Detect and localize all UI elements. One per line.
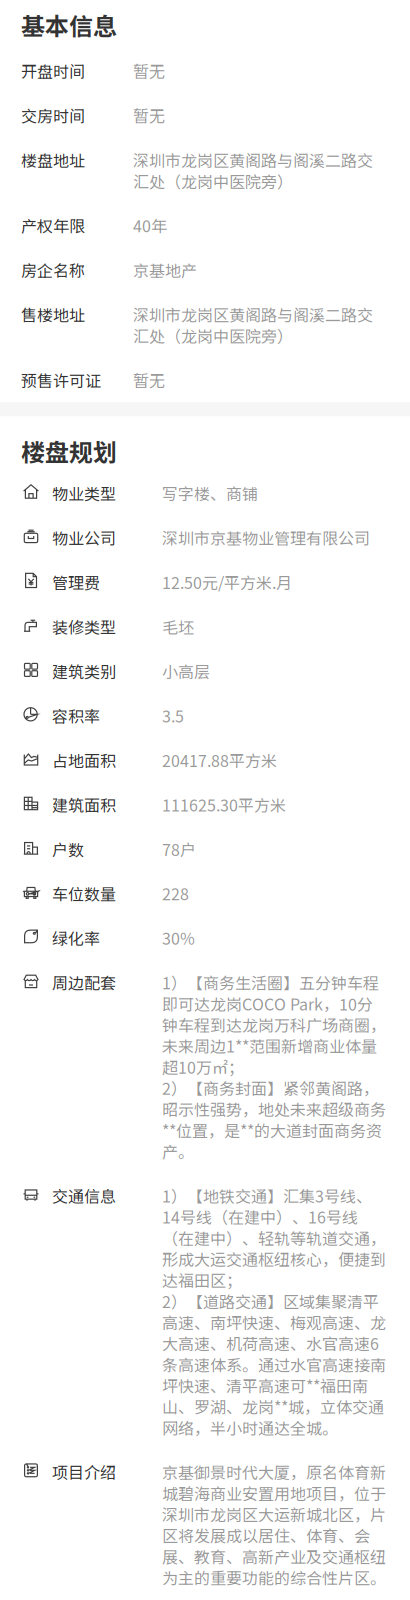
button[interactable]: 项目介绍 <box>0 1450 410 1600</box>
button[interactable]: 物业类型 <box>0 471 410 515</box>
staticText: 产权年限 <box>21 215 85 236</box>
staticText: 装修类型 <box>52 616 116 637</box>
staticText: 预售许可证 <box>21 369 101 390</box>
staticText: 物业类型 <box>52 482 116 504</box>
staticText: 京基御景时代大厦，原名体育新城碧海商业安置用地项目，位于深圳市龙岗区大运新城北区… <box>162 1461 386 1588</box>
staticText: 111625.30平方米 <box>162 794 286 815</box>
button[interactable]: 物业公司 <box>0 515 410 560</box>
staticText: 12.50元/平方米.月 <box>162 571 292 593</box>
staticText: 1）【地铁交通】汇集3号线、14号线（在建中）、16号线（在建中）、轻轨等轨道交… <box>162 1185 386 1438</box>
button[interactable]: 建筑面积 <box>0 782 410 827</box>
staticText: 毛坯 <box>162 616 194 637</box>
staticText: 3.5 <box>162 705 184 726</box>
staticText: 建筑类别 <box>52 660 116 681</box>
button[interactable]: 周边配套 <box>0 960 410 1173</box>
staticText: 绿化率 <box>52 927 100 948</box>
button[interactable]: 建筑类别 <box>0 649 410 693</box>
staticText: 78户 <box>162 838 196 859</box>
staticText: 户数 <box>52 838 84 859</box>
staticText: 车位数量 <box>52 883 116 904</box>
staticText: 30% <box>162 927 195 948</box>
staticText: 40年 <box>133 215 167 236</box>
button[interactable]: 装修类型 <box>0 604 410 649</box>
button[interactable]: 管理费 <box>0 560 410 604</box>
button[interactable]: 绿化率 <box>0 916 410 960</box>
button[interactable]: 交房时间 <box>0 93 410 138</box>
staticText: 交房时间 <box>21 105 85 126</box>
button[interactable]: 车位数量 <box>0 871 410 916</box>
button[interactable]: 交通信息 <box>0 1173 410 1450</box>
staticText: 周边配套 <box>52 972 116 993</box>
button[interactable]: 楼盘地址 <box>0 138 410 203</box>
button[interactable]: 容积率 <box>0 693 410 738</box>
staticText: 暂无 <box>133 369 165 390</box>
staticText: 物业公司 <box>52 527 116 548</box>
staticText: 深圳市龙岗区黄阁路与阁溪二路交汇处（龙岗中医院旁） <box>133 304 373 346</box>
staticText: 深圳市京基物业管理有限公司 <box>162 527 370 548</box>
staticText: 售楼地址 <box>21 304 85 325</box>
button[interactable]: 占地面积 <box>0 738 410 782</box>
staticText: 管理费 <box>52 571 100 593</box>
button[interactable]: 房企名称 <box>0 248 410 292</box>
staticText: 深圳市龙岗区黄阁路与阁溪二路交汇处（龙岗中医院旁） <box>133 149 373 191</box>
staticText: 房企名称 <box>21 259 85 280</box>
staticText: 1）【商务生活圈】五分钟车程即可达龙岗COCO Park，10分钟车程到达龙岗万… <box>162 972 386 1161</box>
staticText: 暂无 <box>133 105 165 126</box>
staticText: 开盘时间 <box>21 60 85 81</box>
staticText: 基本信息 <box>21 9 117 41</box>
staticText: 容积率 <box>52 705 100 726</box>
button[interactable]: 预售许可证 <box>0 358 410 402</box>
button[interactable]: 售楼地址 <box>0 292 410 358</box>
staticText: 楼盘规划 <box>21 435 117 467</box>
staticText: 小高层 <box>162 660 210 681</box>
staticText: 暂无 <box>133 60 165 81</box>
staticText: 20417.88平方米 <box>162 749 277 770</box>
button[interactable]: 产权年限 <box>0 203 410 248</box>
staticText: 京基地产 <box>133 259 197 280</box>
staticText: 楼盘地址 <box>21 149 85 170</box>
staticText: 写字楼、商铺 <box>162 482 258 504</box>
button[interactable]: 户数 <box>0 827 410 871</box>
staticText: 228 <box>162 883 189 904</box>
staticText: 占地面积 <box>52 749 116 770</box>
staticText: 项目介绍 <box>52 1461 116 1482</box>
staticText: 交通信息 <box>52 1185 116 1206</box>
staticText: 建筑面积 <box>52 794 116 815</box>
button[interactable]: 开盘时间 <box>0 49 410 93</box>
